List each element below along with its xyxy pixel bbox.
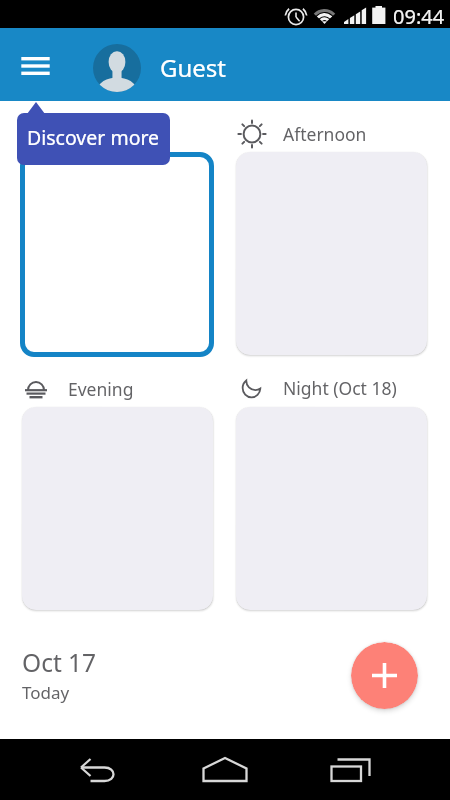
button[interactable]: Profile (93, 44, 141, 92)
staticText: Discover more (27, 124, 160, 151)
button[interactable]: Recent apps (316, 744, 388, 796)
button[interactable]: Back (64, 744, 136, 796)
button[interactable]: Add (351, 642, 418, 709)
button[interactable]: Home (189, 744, 261, 796)
button[interactable] (20, 152, 214, 357)
staticText: Guest (160, 51, 226, 84)
staticText: 09:44 (393, 3, 445, 30)
staticText: Afternoon (283, 122, 367, 146)
staticText: Night (Oct 18) (283, 376, 397, 400)
button[interactable]: Open navigation menu (13, 43, 58, 88)
staticText: Oct 17 (22, 646, 97, 679)
staticText: Evening (68, 377, 134, 401)
staticText: Today (22, 681, 70, 704)
